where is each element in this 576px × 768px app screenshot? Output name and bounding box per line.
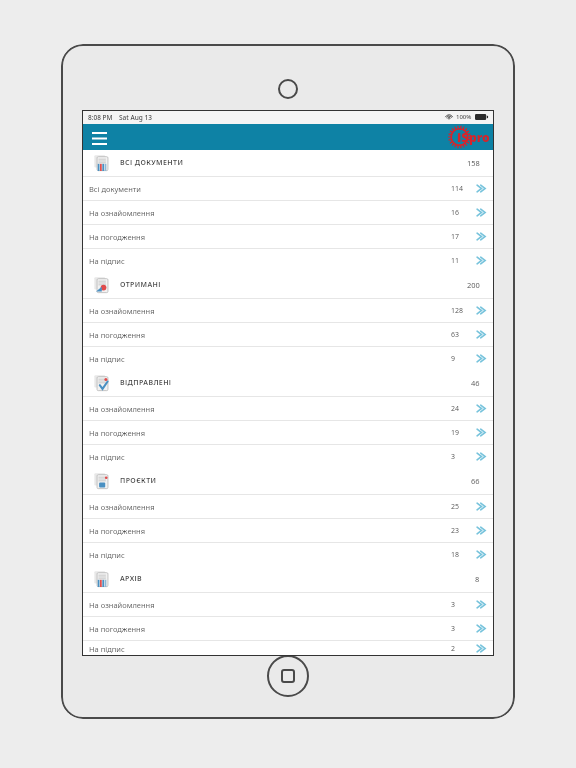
button[interactable]: На погодження <box>82 323 494 346</box>
button[interactable]: На підпис <box>82 641 494 656</box>
staticText: Sat Aug 13 <box>119 113 152 122</box>
staticText: 2 <box>451 644 469 654</box>
button[interactable]: На погодження <box>82 421 494 444</box>
staticText: pro <box>469 129 490 145</box>
staticText: На погодження <box>89 428 146 438</box>
staticText: ПРОЄКТИ <box>120 476 157 486</box>
staticText: 63 <box>451 330 469 340</box>
staticText: 200 <box>467 280 480 290</box>
staticText: На ознайомлення <box>89 600 155 610</box>
button[interactable]: На ознайомлення <box>82 593 494 616</box>
staticText: На підпис <box>89 452 125 462</box>
staticText: 19 <box>451 428 469 438</box>
staticText: На ознайомлення <box>89 502 155 512</box>
button[interactable]: Всі документи <box>82 177 494 200</box>
staticText: 158 <box>467 158 480 168</box>
button[interactable]: На погодження <box>82 225 494 248</box>
staticText: АРХІВ <box>120 574 143 584</box>
staticText: На підпис <box>89 256 125 266</box>
button[interactable]: АРХІВ <box>82 566 494 592</box>
staticText: Всі документи <box>89 184 141 194</box>
button[interactable]: На ознайомлення <box>82 201 494 224</box>
staticText: ВСІ ДОКУМЕНТИ <box>120 158 184 168</box>
button[interactable]: На погодження <box>82 617 494 640</box>
staticText: 23 <box>451 526 469 536</box>
staticText: На погодження <box>89 624 146 634</box>
staticText: На підпис <box>89 550 125 560</box>
staticText: На підпис <box>89 354 125 364</box>
button[interactable]: Menu <box>86 124 112 150</box>
button[interactable]: IS pro logo <box>448 125 492 149</box>
staticText: 8:08 PM <box>88 113 113 122</box>
button[interactable]: На підпис <box>82 445 494 468</box>
staticText: На підпис <box>89 644 125 654</box>
button[interactable]: ВСІ ДОКУМЕНТИ <box>82 150 494 176</box>
staticText: 17 <box>451 232 469 242</box>
staticText: 128 <box>451 306 469 316</box>
button[interactable]: На ознайомлення <box>82 495 494 518</box>
staticText: 9 <box>451 354 469 364</box>
staticText: 3 <box>451 452 469 462</box>
staticText: На погодження <box>89 330 146 340</box>
staticText: 25 <box>451 502 469 512</box>
button[interactable]: На ознайомлення <box>82 299 494 322</box>
staticText: 3 <box>451 600 469 610</box>
button[interactable]: На підпис <box>82 543 494 566</box>
button[interactable]: ОТРИМАНІ <box>82 272 494 298</box>
staticText: 100% <box>456 113 472 121</box>
staticText: 3 <box>451 624 469 634</box>
staticText: 16 <box>451 208 469 218</box>
staticText: 114 <box>451 184 469 194</box>
staticText: На ознайомлення <box>89 306 155 316</box>
staticText: На ознайомлення <box>89 208 155 218</box>
staticText: 46 <box>471 378 480 388</box>
staticText: На погодження <box>89 526 146 536</box>
staticText: На ознайомлення <box>89 404 155 414</box>
staticText: 11 <box>451 256 469 266</box>
staticText: ВІДПРАВЛЕНІ <box>120 378 172 388</box>
staticText: 24 <box>451 404 469 414</box>
staticText: ОТРИМАНІ <box>120 280 161 290</box>
button[interactable]: На підпис <box>82 347 494 370</box>
button[interactable]: На підпис <box>82 249 494 272</box>
staticText: 66 <box>471 476 480 486</box>
button[interactable]: ВІДПРАВЛЕНІ <box>82 370 494 396</box>
button[interactable]: На погодження <box>82 519 494 542</box>
staticText: 18 <box>451 550 469 560</box>
button[interactable]: ПРОЄКТИ <box>82 468 494 494</box>
staticText: iS <box>457 128 469 146</box>
staticText: 8 <box>475 574 480 584</box>
staticText: На погодження <box>89 232 146 242</box>
button[interactable]: На ознайомлення <box>82 397 494 420</box>
